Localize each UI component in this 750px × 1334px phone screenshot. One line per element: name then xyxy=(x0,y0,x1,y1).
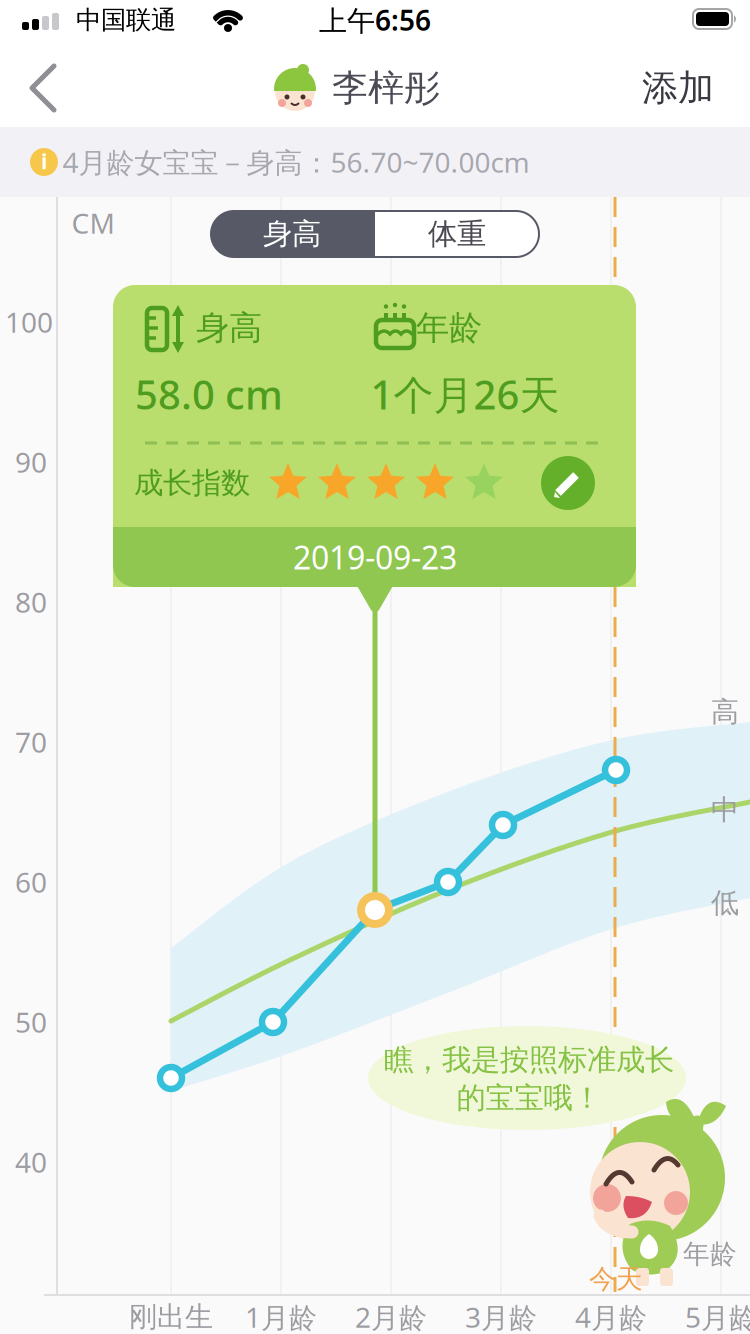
staticText: 100 xyxy=(5,303,53,341)
staticText: 40 xyxy=(15,1143,47,1181)
staticText: 2019-09-23 xyxy=(293,536,457,578)
staticText: 年龄 xyxy=(416,307,482,348)
staticText: 1月龄 xyxy=(245,1298,317,1334)
staticText: 60 xyxy=(15,863,47,901)
staticText: 50 xyxy=(15,1003,47,1041)
button[interactable]: 编辑 xyxy=(541,456,595,510)
button[interactable]: 李梓彤 xyxy=(272,65,440,111)
staticText: 中 xyxy=(711,793,739,827)
staticText: 上午6:56 xyxy=(319,1,431,39)
button[interactable]: 返回 xyxy=(16,56,80,120)
staticText: 90 xyxy=(15,443,47,481)
staticText: 高 xyxy=(711,695,739,729)
staticText: i xyxy=(41,147,47,175)
staticText: 1个月26天 xyxy=(370,367,559,420)
staticText: CM xyxy=(71,204,114,242)
staticText: 添加 xyxy=(642,66,714,110)
staticText: 年龄 xyxy=(683,1238,737,1270)
button[interactable]: 身高 xyxy=(209,210,374,258)
staticText: 58.0 cm xyxy=(135,367,283,420)
staticText: 中国联通 xyxy=(76,4,176,35)
staticText: 低 xyxy=(711,886,739,920)
button[interactable]: 添加 xyxy=(623,53,733,123)
staticText: 4月龄女宝宝－身高：56.70~70.00cm xyxy=(62,143,529,181)
staticText: 70 xyxy=(15,723,47,761)
staticText: 刚出生 xyxy=(129,1300,213,1334)
button[interactable]: 体重 xyxy=(374,210,539,258)
staticText: 身高 xyxy=(196,307,262,348)
staticText: 3月龄 xyxy=(465,1298,537,1334)
staticText: 的宝宝哦！ xyxy=(456,1080,601,1116)
staticText: 2月龄 xyxy=(355,1298,427,1334)
staticText: 80 xyxy=(15,583,47,621)
staticText: 李梓彤 xyxy=(332,66,440,110)
staticText: 体重 xyxy=(428,216,486,252)
staticText: 瞧，我是按照标准成长 xyxy=(384,1042,674,1078)
staticText: 身高 xyxy=(263,216,321,252)
staticText: 4月龄 xyxy=(575,1298,647,1334)
staticText: 成长指数 xyxy=(134,465,250,501)
staticText: 今天 xyxy=(589,1263,643,1295)
staticText: 5月龄 xyxy=(685,1298,750,1334)
